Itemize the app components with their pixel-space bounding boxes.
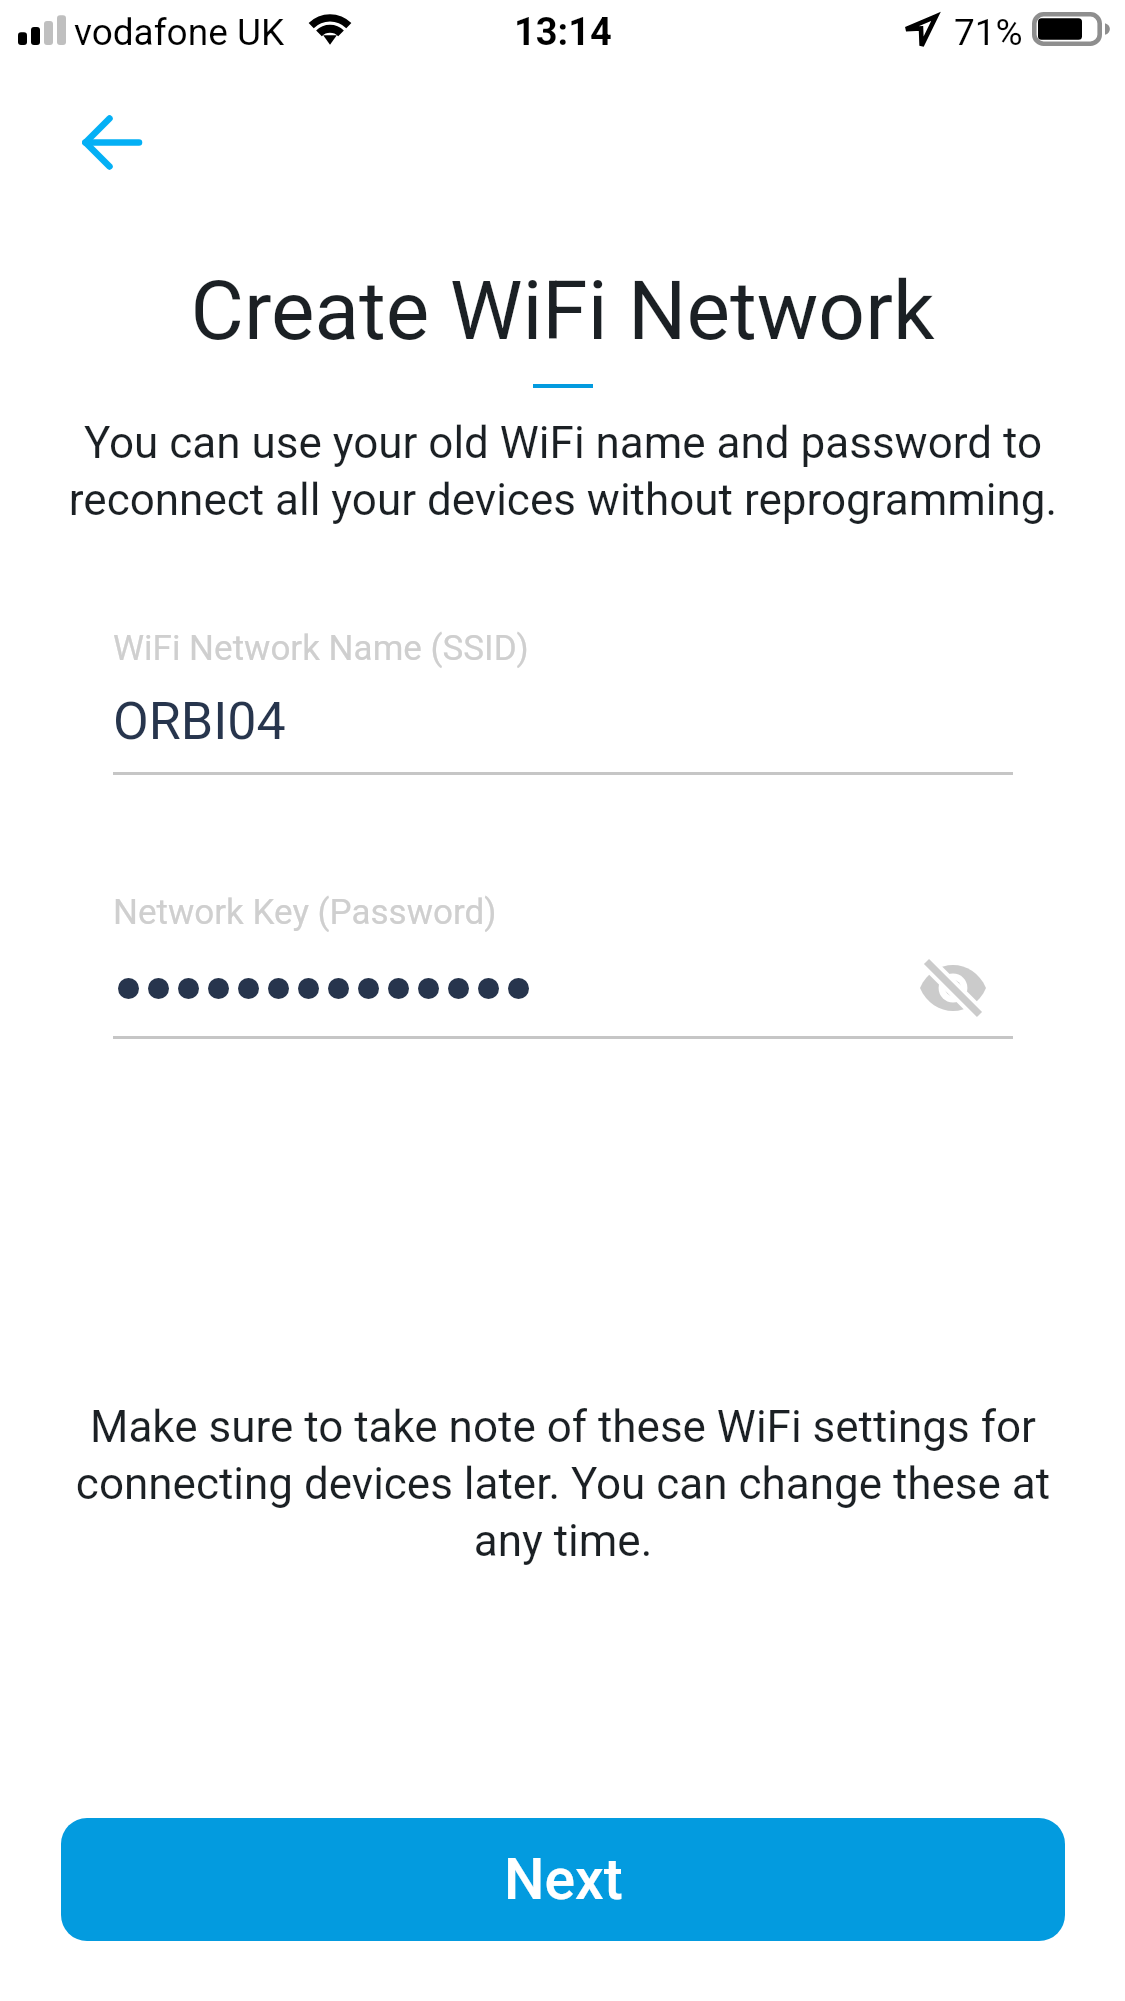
staticText: vodafone UK <box>74 11 285 54</box>
staticText: Network Key (Password) <box>113 892 497 933</box>
button[interactable]: Next <box>61 1818 1065 1941</box>
button[interactable]: ORBI04 <box>113 680 1013 775</box>
staticText: Create WiFi Network <box>0 263 1125 359</box>
staticText: 71% <box>954 11 1023 54</box>
button[interactable]: Back <box>42 72 182 212</box>
staticText: Make sure to take note of these WiFi set… <box>58 1401 1068 1567</box>
staticText: Next <box>504 1846 623 1913</box>
button[interactable]: Show password <box>913 948 993 1028</box>
staticText: WiFi Network Name (SSID) <box>113 628 529 669</box>
staticText: 13:14 <box>514 10 612 55</box>
staticText: You can use your old WiFi name and passw… <box>58 417 1068 526</box>
button[interactable] <box>113 950 1013 1039</box>
staticText: ORBI04 <box>113 691 286 752</box>
